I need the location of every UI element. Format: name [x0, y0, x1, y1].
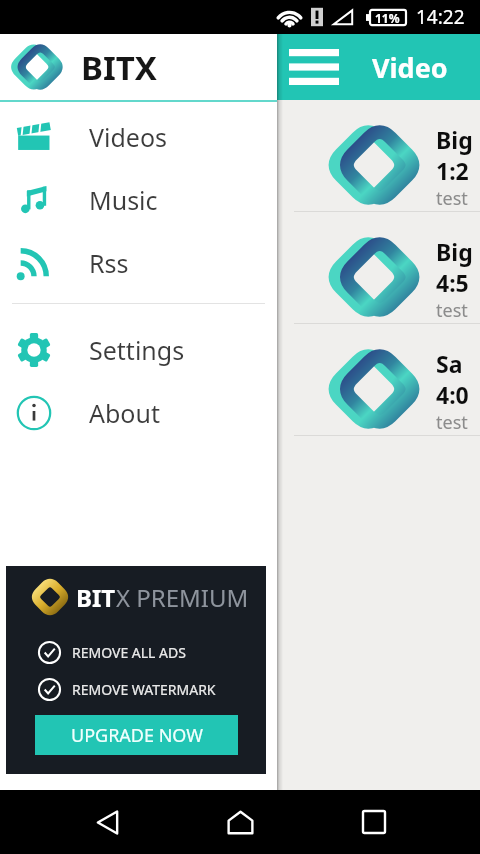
staticText: 1:23	[436, 155, 480, 186]
staticText: test	[436, 186, 468, 211]
staticText: Video	[372, 49, 448, 86]
staticText: 4:00	[436, 379, 480, 410]
staticText: 14:22	[416, 4, 465, 30]
staticText: test	[436, 298, 468, 323]
button[interactable]: Back	[80, 795, 134, 849]
button[interactable]: Open navigation drawer	[286, 39, 342, 95]
staticText: 4:56	[436, 267, 480, 298]
button[interactable]: Videos	[0, 105, 277, 168]
button[interactable]: Sample Video	[277, 324, 480, 435]
staticText: Big Buck Bunny	[436, 124, 480, 155]
button[interactable]: Rss	[0, 231, 277, 294]
staticText: BITX	[81, 45, 157, 90]
staticText: test	[436, 410, 468, 435]
staticText: UPGRADE NOW	[71, 723, 203, 748]
staticText: X PREMIUM	[116, 581, 249, 614]
staticText: Rss	[89, 246, 129, 280]
button[interactable]: Big Buck Bunny	[277, 100, 480, 211]
staticText: Big Buck Bunny	[436, 236, 480, 267]
button[interactable]: Big Buck Bunny	[277, 212, 480, 323]
staticText: About	[89, 396, 160, 430]
button[interactable]: About	[0, 381, 277, 444]
button[interactable]: Settings	[0, 318, 277, 381]
staticText: BIT	[76, 581, 116, 614]
staticText: Sample Video	[436, 348, 480, 379]
button[interactable]: Home	[213, 795, 267, 849]
staticText: Videos	[89, 120, 168, 154]
button[interactable]: Music	[0, 168, 277, 231]
staticText: Music	[89, 183, 158, 217]
staticText: REMOVE ALL ADS	[72, 643, 186, 662]
button[interactable]: UPGRADE NOW	[35, 715, 238, 755]
staticText: Settings	[89, 333, 185, 367]
staticText: REMOVE WATERMARK	[72, 680, 216, 699]
button[interactable]: Recent apps	[347, 795, 401, 849]
staticText: 11%	[375, 10, 400, 26]
